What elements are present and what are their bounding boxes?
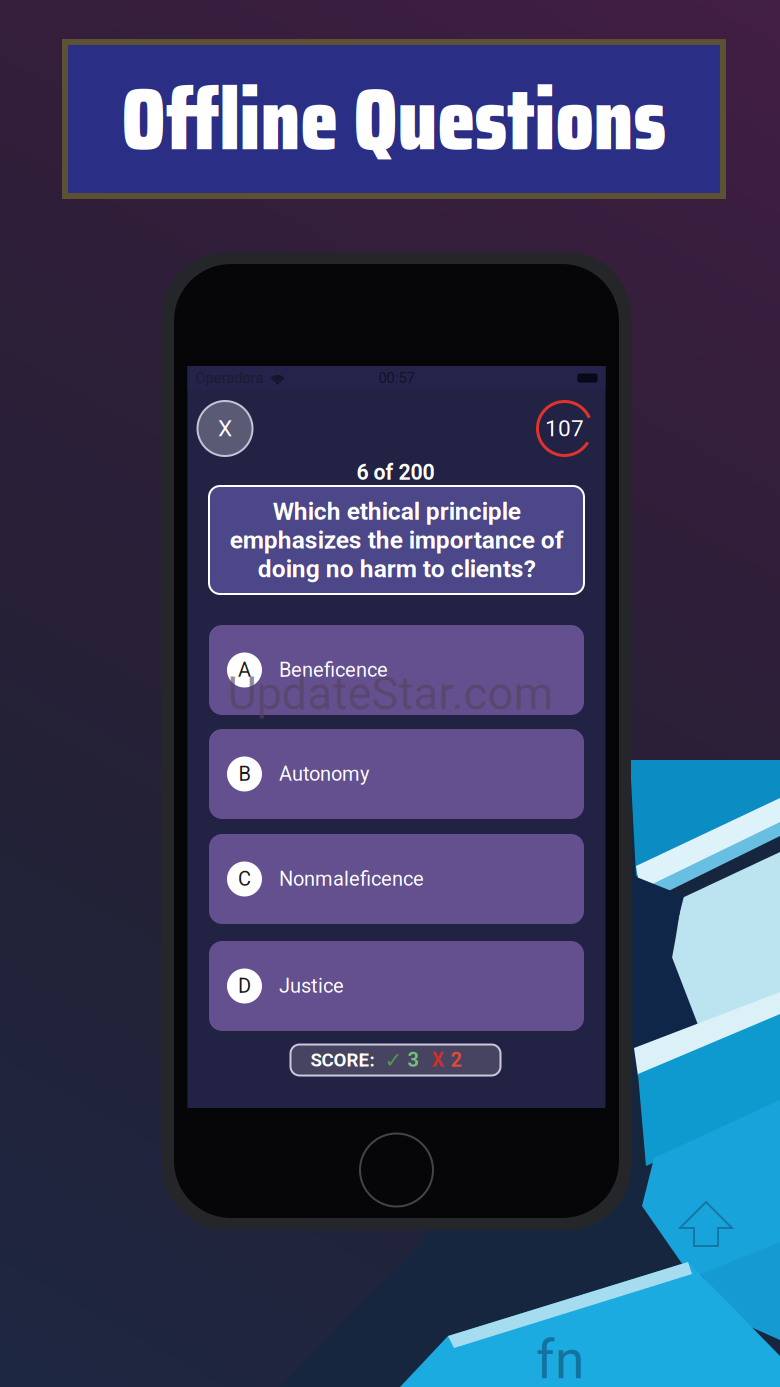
staticText: Nonmaleficence (279, 867, 424, 891)
staticText: Justice (279, 974, 344, 998)
staticText: 3 (407, 1048, 418, 1072)
button[interactable]: B (209, 729, 584, 819)
button[interactable]: D (209, 941, 584, 1031)
staticText: Offline Questions (121, 51, 666, 187)
staticText: UpdateStar.com (227, 667, 553, 720)
staticText: X (218, 415, 232, 442)
staticText: ✓ (384, 1048, 402, 1072)
staticText: 6 of 200 (356, 460, 434, 485)
staticText: Beneficence (279, 658, 388, 682)
button[interactable]: Close (197, 401, 252, 456)
staticText: Operadora (195, 369, 263, 387)
staticText: SCORE: (310, 1049, 374, 1071)
staticText: A (238, 658, 251, 682)
staticText: C (238, 867, 251, 891)
staticText: B (238, 762, 250, 786)
staticText: 107 (545, 415, 584, 442)
staticText: D (238, 974, 251, 998)
staticText: 00:57 (378, 369, 414, 387)
button[interactable]: A (209, 625, 584, 715)
button[interactable]: C (209, 834, 584, 924)
staticText: X (431, 1048, 444, 1072)
staticText: 2 (450, 1048, 461, 1072)
staticText: Which ethical principle emphasizes the i… (229, 497, 563, 583)
staticText: fn (536, 1329, 584, 1387)
staticText: Autonomy (279, 762, 369, 786)
